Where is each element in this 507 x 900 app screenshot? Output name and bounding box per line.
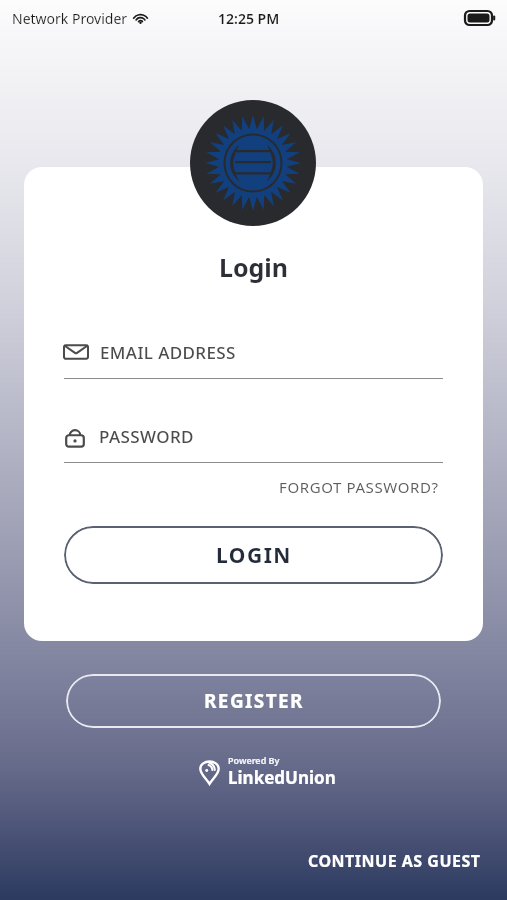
other: LinkedUnion — [196, 758, 223, 785]
button[interactable]: FORGOT PASSWORD? — [275, 473, 443, 501]
staticText: Powered By — [228, 754, 280, 766]
staticText: Network Provider — [12, 9, 128, 28]
button[interactable]: CONTINUE AS GUEST — [302, 844, 487, 878]
staticText: CONTINUE AS GUEST — [308, 850, 481, 872]
staticText: PASSWORD — [99, 425, 194, 448]
staticText: FORGOT PASSWORD? — [279, 477, 439, 497]
button[interactable]: LOGIN — [64, 526, 443, 584]
staticText: LinkedUnion — [228, 766, 336, 789]
staticText: LOGIN — [216, 541, 292, 570]
button[interactable]: Email — [64, 340, 443, 379]
other: Password — [64, 426, 86, 448]
staticText: REGISTER — [204, 688, 304, 714]
other: Email — [64, 340, 88, 364]
button[interactable]: LinkedUnion — [196, 754, 336, 789]
staticText: EMAIL ADDRESS — [100, 341, 236, 364]
button[interactable]: Password — [64, 425, 443, 463]
staticText: 12:25 PM — [218, 9, 280, 28]
staticText: Login — [24, 250, 483, 284]
button[interactable]: REGISTER — [66, 674, 441, 728]
